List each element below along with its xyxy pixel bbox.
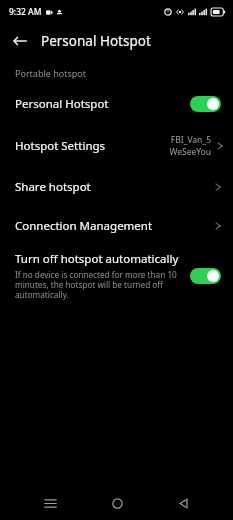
button[interactable]: Turn off hotspot automatically <box>0 249 233 305</box>
staticText: Personal Hotspot <box>15 96 190 112</box>
button[interactable]: Hotspot Settings <box>0 127 233 165</box>
staticText: Personal Hotspot <box>41 32 151 50</box>
staticText: WeSeeYou <box>169 146 211 158</box>
button[interactable]: Back <box>166 486 200 520</box>
staticText: 9:32 AM <box>9 6 42 18</box>
button[interactable]: Connection Management <box>0 211 233 241</box>
staticText: Turn off hotspot automatically <box>15 251 179 267</box>
button[interactable]: Home <box>100 486 134 520</box>
staticText: Connection Management <box>15 218 213 234</box>
staticText: If no device is connected for more than … <box>15 269 184 301</box>
button[interactable]: Recents <box>33 486 67 520</box>
button[interactable]: Toggle <box>190 268 221 284</box>
staticText: Share hotspot <box>15 179 213 195</box>
staticText: FBI_Van_5 <box>170 134 211 146</box>
staticText: Portable hotspot <box>15 67 86 79</box>
button[interactable]: Toggle <box>190 96 221 112</box>
button[interactable]: Back <box>7 28 33 54</box>
button[interactable]: Share hotspot <box>0 172 233 202</box>
button[interactable]: Personal Hotspot <box>0 89 233 119</box>
staticText: Hotspot Settings <box>15 138 169 154</box>
